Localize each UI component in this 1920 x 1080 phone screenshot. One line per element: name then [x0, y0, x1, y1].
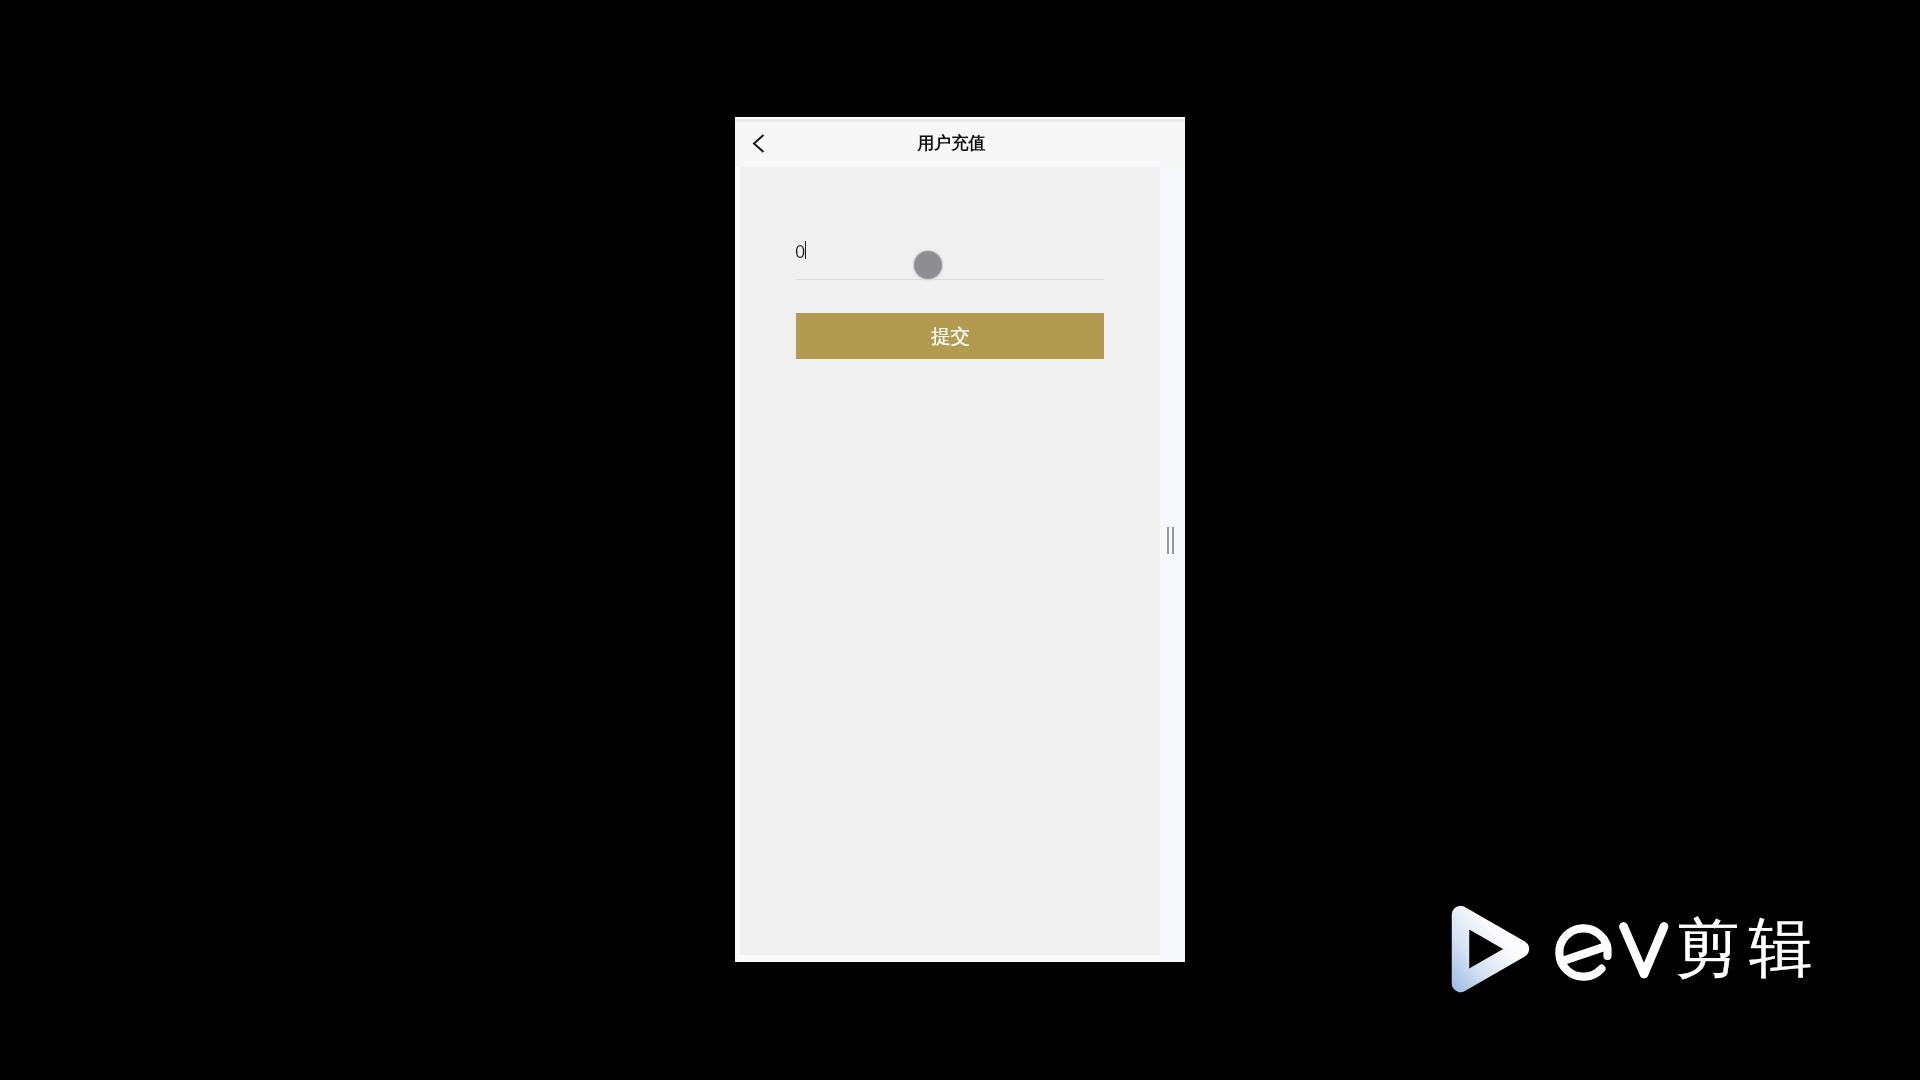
- staticText: 剪辑: [1671, 908, 1817, 989]
- staticText: 提交: [931, 324, 970, 349]
- staticText: 用户充值: [917, 133, 985, 154]
- button[interactable]: 提交: [796, 313, 1104, 359]
- button[interactable]: Drag handle: [1163, 521, 1177, 561]
- button[interactable]: Amount input: [796, 227, 1104, 280]
- staticText: 0: [795, 239, 806, 264]
- button[interactable]: Back: [735, 117, 781, 167]
